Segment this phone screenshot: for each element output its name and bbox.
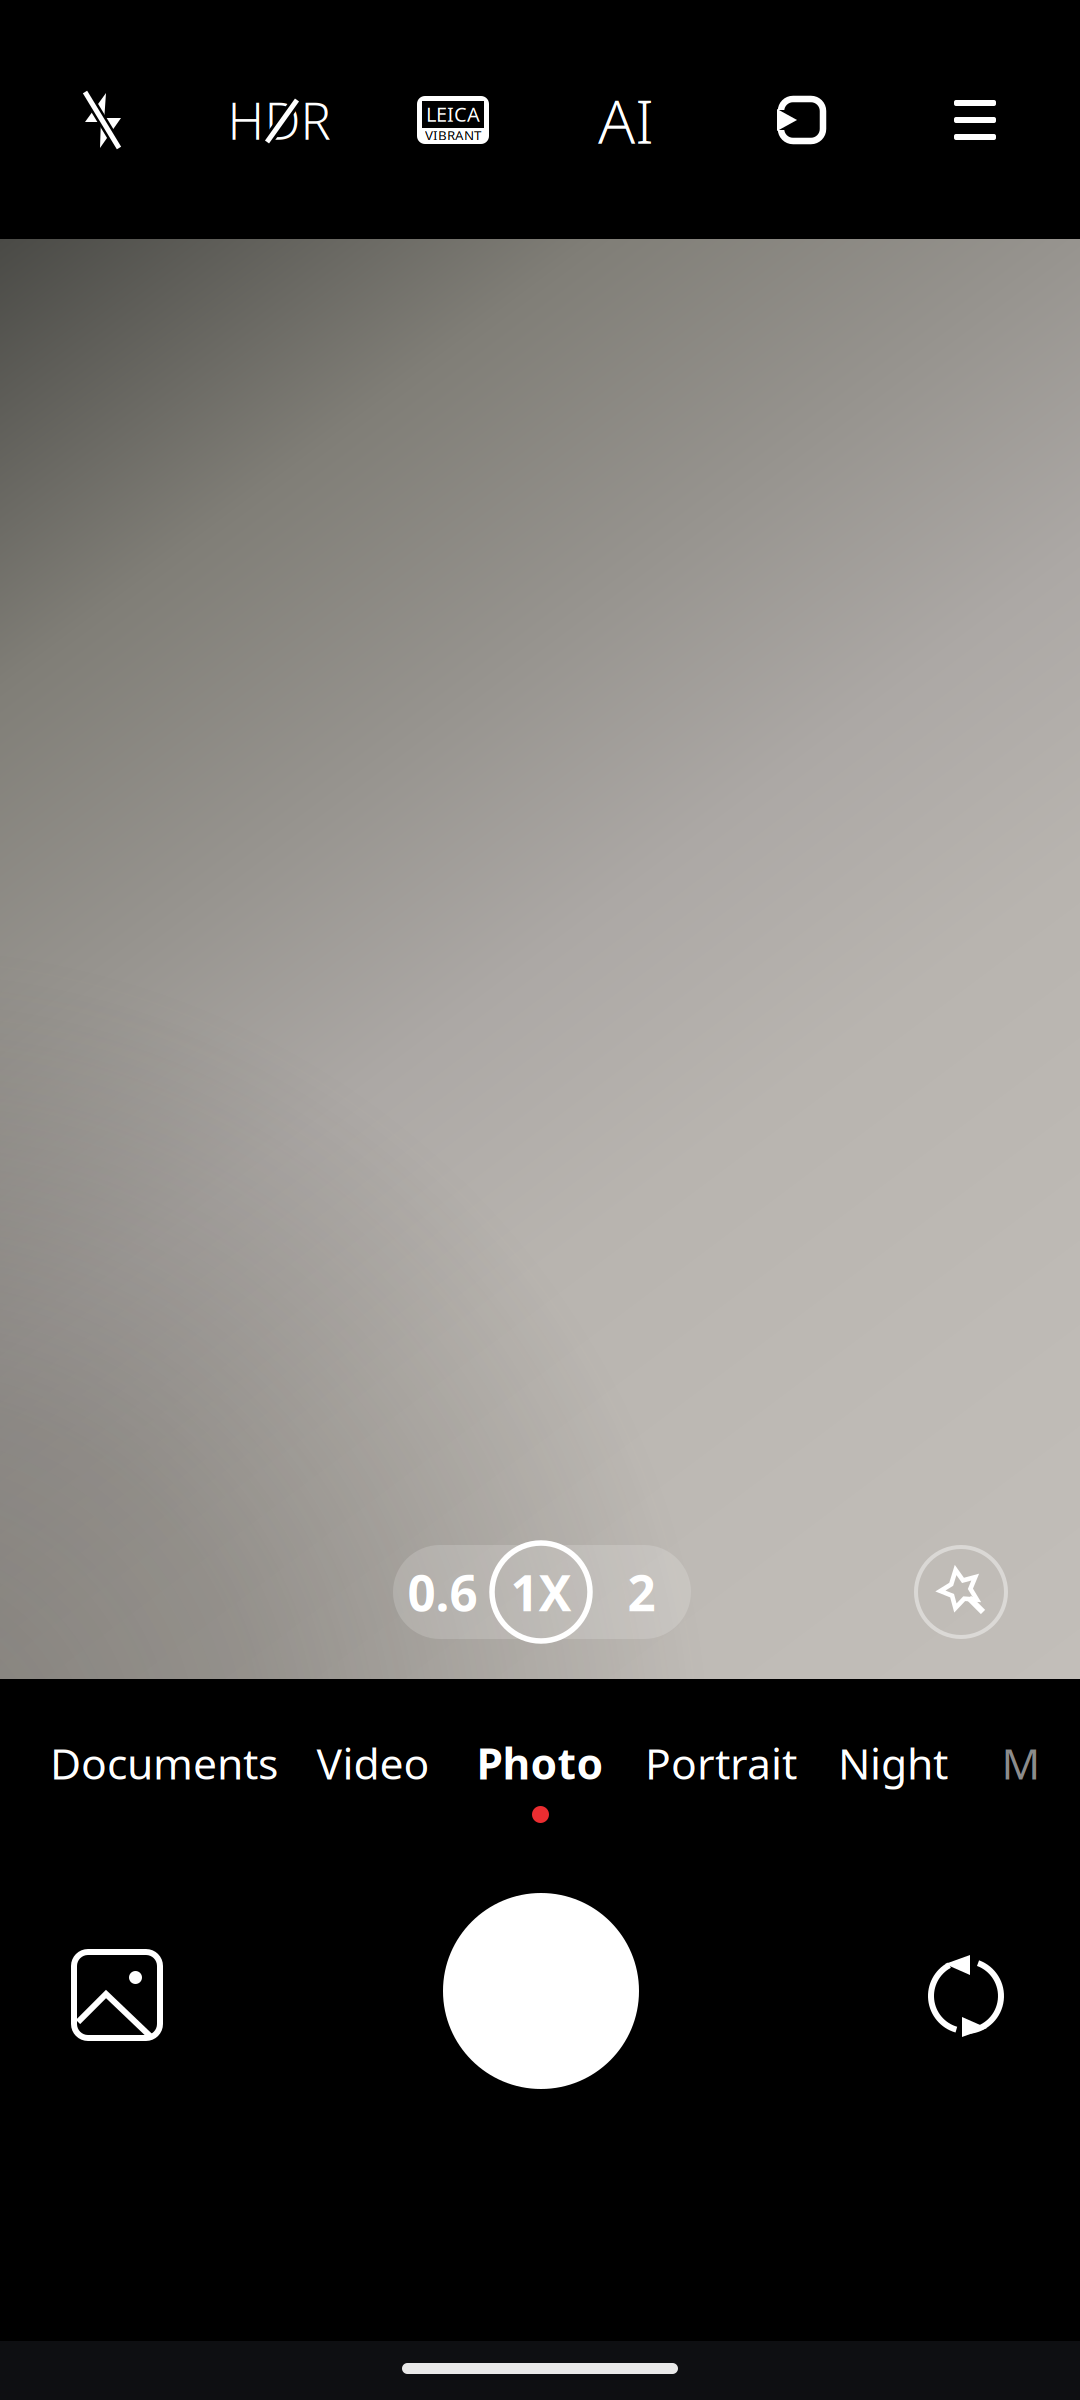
staticText: Night bbox=[838, 1735, 948, 1791]
button[interactable]: Gallery bbox=[42, 1920, 192, 2070]
button[interactable]: Video bbox=[303, 1724, 443, 1802]
button[interactable]: HDR off bbox=[214, 58, 344, 182]
button[interactable]: Portrait bbox=[636, 1724, 806, 1802]
button[interactable]: Switch camera bbox=[891, 1921, 1041, 2071]
button[interactable]: Flash off bbox=[42, 58, 166, 182]
button[interactable]: Leica Vibrant colour bbox=[391, 58, 515, 182]
staticText: 0.6 bbox=[407, 1559, 477, 1625]
staticText: 2 bbox=[627, 1559, 655, 1625]
button[interactable]: Motion photo bbox=[738, 58, 862, 182]
button[interactable]: 2x zoom bbox=[592, 1545, 691, 1639]
staticText: HDR bbox=[227, 86, 330, 154]
button[interactable]: Documents bbox=[39, 1724, 289, 1802]
button[interactable]: M bbox=[992, 1724, 1050, 1802]
button[interactable]: More settings bbox=[913, 58, 1037, 182]
staticText: VIBRANT bbox=[425, 126, 481, 144]
button[interactable]: Take photo bbox=[443, 1893, 639, 2089]
button[interactable]: 0.6x zoom bbox=[393, 1545, 492, 1639]
button[interactable]: AI photo enhancement bbox=[916, 1547, 1006, 1637]
staticText: 1X bbox=[510, 1559, 571, 1625]
staticText: AI bbox=[598, 79, 654, 161]
button[interactable]: Photo bbox=[465, 1724, 615, 1802]
button[interactable]: 1x zoom bbox=[492, 1543, 590, 1641]
button[interactable]: AI scene detection bbox=[564, 58, 688, 182]
staticText: Documents bbox=[50, 1735, 278, 1791]
staticText: Portrait bbox=[645, 1735, 797, 1791]
staticText: M bbox=[1001, 1735, 1040, 1791]
staticText: LEICA bbox=[426, 101, 480, 127]
staticText: Photo bbox=[476, 1735, 603, 1791]
staticText: Video bbox=[316, 1735, 429, 1791]
button[interactable]: Night bbox=[823, 1724, 963, 1802]
